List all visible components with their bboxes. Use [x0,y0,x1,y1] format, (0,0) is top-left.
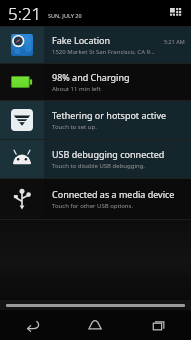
staticText: Touch for other USB options. [52,202,134,210]
staticText: 5:21 [8,2,42,25]
staticText: 1520 Market St San Francisco, CA 94102 [52,48,158,56]
button[interactable]: Back [0,310,63,340]
button[interactable]: Connected as a media device [0,179,191,219]
button[interactable]: Quick settings [166,4,184,22]
button[interactable]: 98% and Charging [0,64,191,100]
staticText: Fake Location [52,34,111,46]
staticText: Touch to set up. [52,123,97,131]
staticText: USB debugging connected [52,148,165,160]
staticText: SUN, JULY 20 [48,12,82,19]
button[interactable]: USB debugging connected [0,140,191,178]
staticText: 98% and Charging [52,71,130,83]
button[interactable]: Tethering or hotspot active [0,101,191,139]
staticText: Tethering or hotspot active [52,109,167,121]
button[interactable]: Home [63,310,127,340]
staticText: Touch to disable USB debugging. [52,162,145,170]
button[interactable]: Recent apps [127,310,191,340]
staticText: Connected as a media device [52,188,175,200]
button[interactable]: Close notification shade [0,300,191,310]
staticText: 5:21 AM [164,38,185,45]
button[interactable]: Fake Location [0,27,191,63]
staticText: About 11 min left [52,85,101,93]
